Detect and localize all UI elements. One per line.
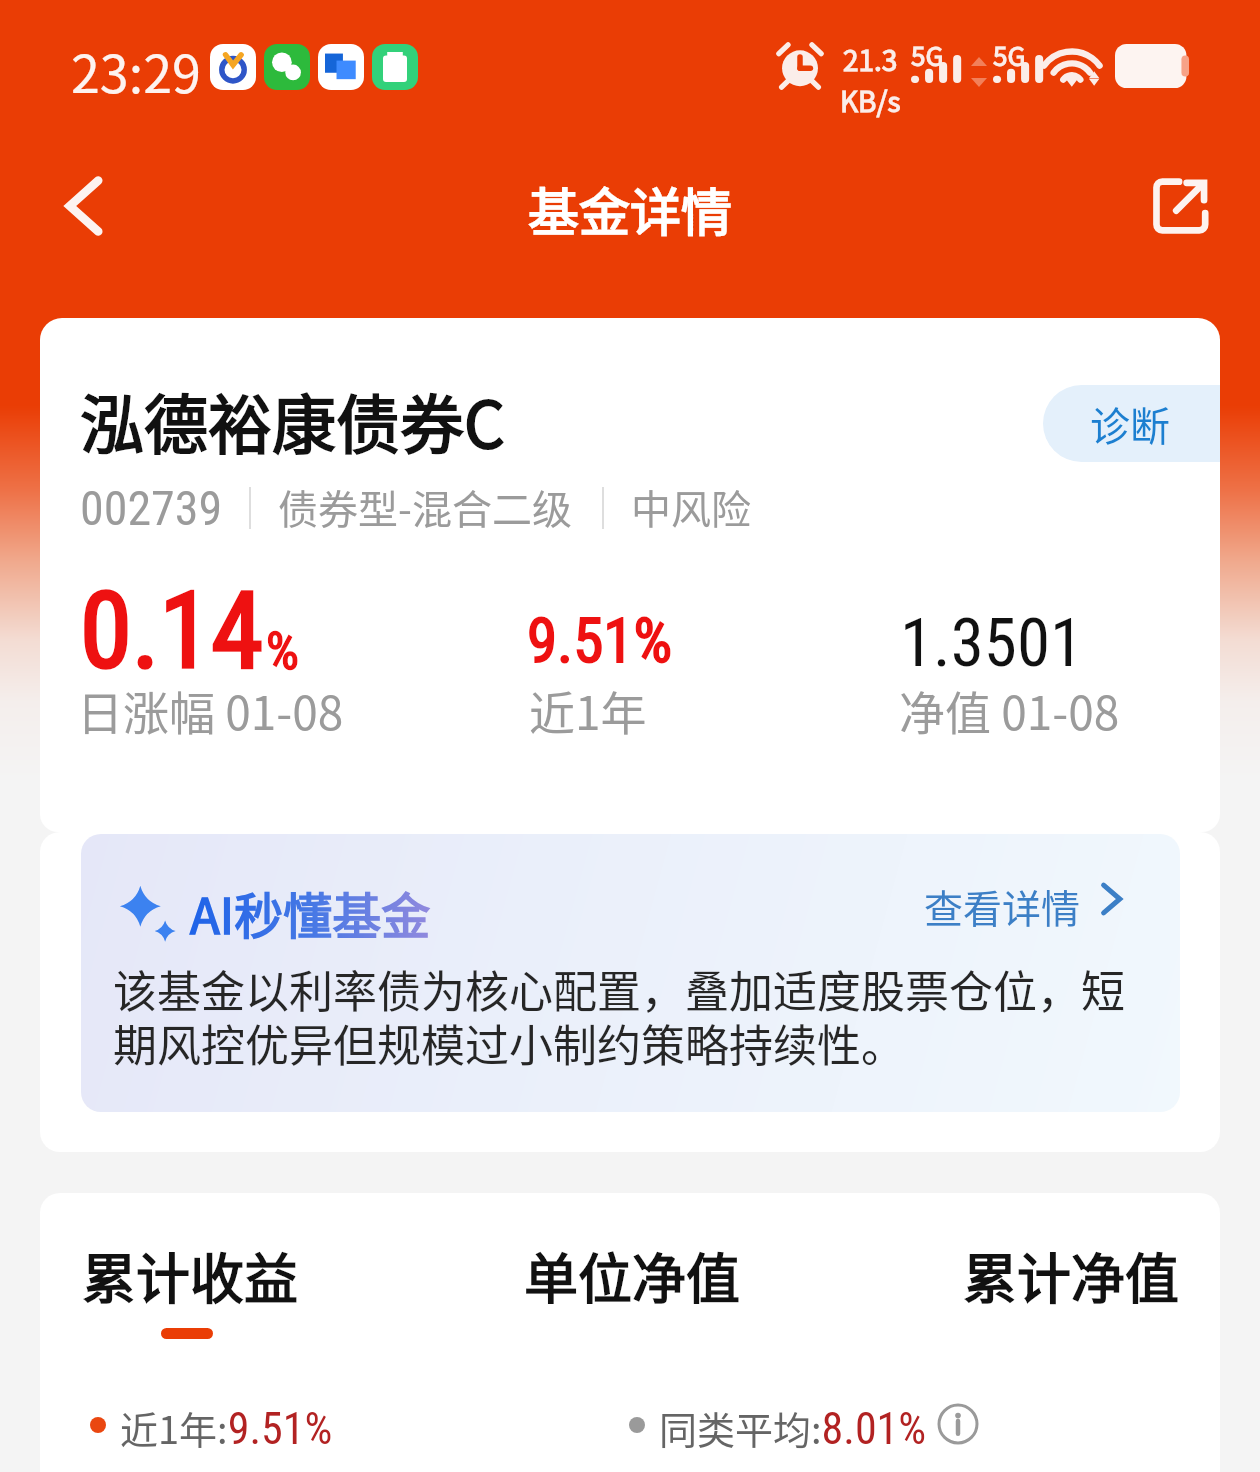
staticText: 债券型-混合二级 [278,478,572,536]
staticText: 近1年:9.51% [120,1400,333,1455]
staticText: 该基金以利率债为核心配置，叠加适度股票仓位，短期风控优异但规模过小制约策略持续性… [113,965,1148,1073]
staticText: 23:29 [71,33,201,108]
button[interactable]: AI秒懂基金 [81,834,1180,1112]
staticText: 基金详情 [528,172,733,246]
staticText: 近1年 [529,677,647,744]
button[interactable]: 累计收益 [82,1236,298,1314]
button[interactable]: Back [46,168,122,244]
staticText: 002739 [80,480,223,536]
staticText: 日涨幅 01-08 [77,677,344,744]
staticText: 21.3 [843,39,898,80]
staticText: 9.51% [527,605,673,676]
button[interactable]: 诊断 [1043,385,1220,462]
button[interactable]: Share [1144,168,1220,244]
staticText: 累计收益 [82,1236,298,1314]
staticText: 5G [911,36,944,74]
staticText: 中风险 [631,478,751,536]
staticText: % [266,621,299,682]
staticText: 查看详情 [924,878,1081,934]
staticText: 0.14 [80,570,264,693]
staticText: 累计净值 [963,1236,1179,1314]
button[interactable]: 累计净值 [963,1236,1179,1314]
staticText: AI秒懂基金 [190,877,431,948]
button[interactable]: Info [937,1403,979,1445]
staticText: KB/s [840,80,901,121]
staticText: 单位净值 [524,1236,740,1314]
staticText: 1.3501 [900,604,1084,683]
staticText: 净值 01-08 [899,677,1120,744]
staticText: 5G [993,36,1026,74]
staticText: 诊断 [1090,395,1170,453]
staticText: 泓德裕康债券C [80,374,505,467]
staticText: 同类平均:8.01% [659,1400,927,1455]
button[interactable]: 单位净值 [524,1236,740,1314]
